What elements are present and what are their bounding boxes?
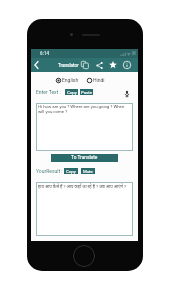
staticText: English (62, 77, 79, 83)
button[interactable]: Back (31, 59, 42, 71)
staticText: Copy (67, 90, 77, 95)
staticText: Hi how are you ? Where are you going ? W… (38, 104, 131, 114)
button[interactable]: Hindi (87, 76, 105, 84)
staticText: Hindi (93, 77, 105, 83)
staticText: To Translate (71, 155, 98, 161)
staticText: Mute (83, 169, 93, 174)
button[interactable]: Copy (79, 59, 91, 71)
button[interactable]: Copy (65, 89, 78, 95)
button[interactable]: Favorite (107, 59, 119, 71)
button[interactable]: To Translate (51, 154, 118, 162)
staticText: Translator (58, 63, 79, 68)
button[interactable]: Paste (80, 89, 93, 95)
button[interactable]: English (56, 76, 79, 84)
staticText: Paste (81, 90, 92, 95)
button[interactable]: Microphone (123, 90, 131, 96)
staticText: 6:14 (40, 51, 50, 56)
staticText: YourResult : (36, 168, 63, 174)
button[interactable]: Mute (81, 168, 95, 174)
button[interactable]: Share (93, 59, 105, 71)
staticText: हाय आप कैसे हैं ? आप कहाँ जा रहे हैं ? ज… (38, 183, 127, 189)
staticText: Copy (66, 169, 76, 174)
button[interactable]: Info (121, 59, 133, 71)
staticText: Enter Text : (36, 89, 61, 95)
button[interactable]: Copy (64, 168, 78, 174)
